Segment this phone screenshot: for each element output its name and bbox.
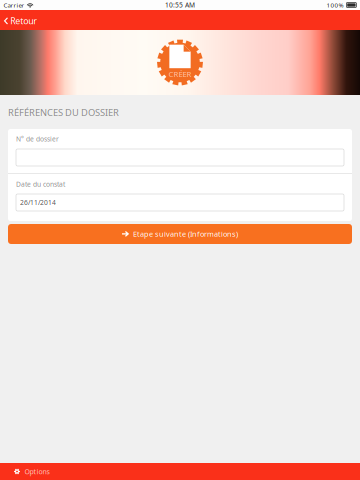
button[interactable]: Options: [0, 463, 57, 480]
staticText: 10:55 AM: [165, 0, 195, 10]
staticText: RÉFÉRENCES DU DOSSIER: [8, 106, 119, 119]
staticText: Date du constat: [16, 180, 65, 189]
button[interactable]: Etape suivante (Informations): [8, 224, 352, 244]
staticText: Options: [24, 467, 49, 476]
staticText: CRÉER: [168, 69, 191, 79]
button[interactable]: Retour: [0, 10, 43, 30]
staticText: N° de dossier: [16, 134, 59, 144]
staticText: Retour: [10, 15, 37, 27]
button[interactable]: Créer: [157, 39, 203, 85]
staticText: Etape suivante (Informations): [133, 229, 238, 239]
staticText: Carrier: [4, 1, 25, 9]
staticText: 100%: [327, 1, 344, 9]
staticText: 26/11/2014: [20, 198, 56, 207]
